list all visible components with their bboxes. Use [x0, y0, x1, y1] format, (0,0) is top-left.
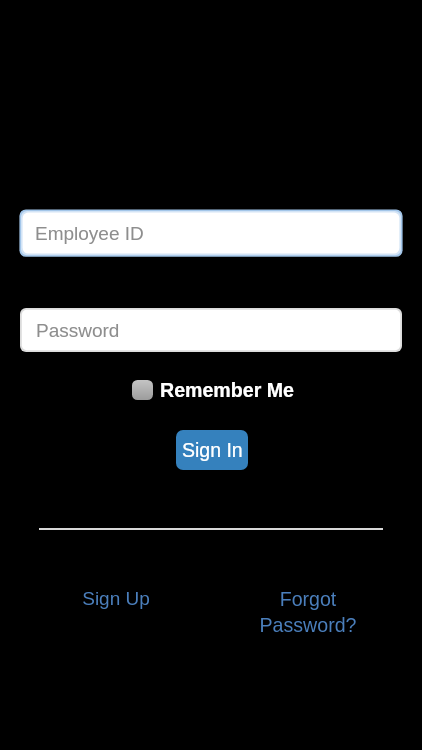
staticText: Employee ID — [35, 223, 144, 244]
staticText: Forgot Password? — [248, 588, 368, 636]
staticText: Sign Up — [82, 588, 150, 609]
staticText: Password — [36, 320, 120, 341]
button[interactable]: Remember Me — [132, 379, 294, 401]
button[interactable]: Forgot Password? — [248, 588, 368, 644]
staticText: Remember Me — [160, 379, 294, 401]
button[interactable]: Sign Up — [56, 588, 176, 618]
button[interactable]: Password input field — [20, 308, 402, 352]
button[interactable]: Employee ID input field — [17, 207, 407, 260]
staticText: Sign In — [182, 439, 243, 461]
button[interactable]: Sign In — [176, 430, 248, 470]
